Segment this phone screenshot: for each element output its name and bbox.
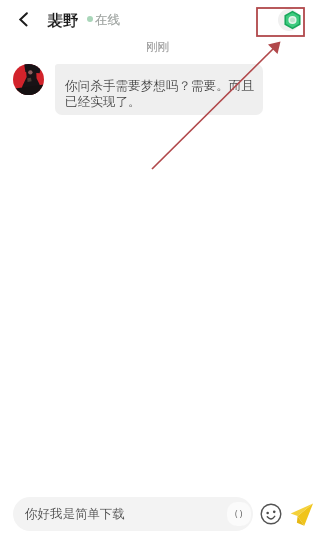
button[interactable]: Back	[4, 3, 36, 35]
staticText: 你好我是简单下载	[25, 506, 125, 522]
button[interactable]: 你问杀手需要梦想吗？需要。而且已经实现了。	[55, 64, 263, 115]
button[interactable]: 你好我是简单下载	[13, 497, 253, 531]
staticText: 在线	[95, 12, 121, 28]
staticText: 你问杀手需要梦想吗？需要。而且已经实现了。	[65, 78, 255, 110]
staticText: ( )	[235, 508, 243, 520]
button[interactable]: Send	[288, 501, 314, 527]
staticText: 刚刚	[146, 40, 169, 54]
button[interactable]: Settings	[272, 0, 313, 38]
button[interactable]: Avatar	[13, 64, 44, 95]
button[interactable]: Emoji	[258, 501, 284, 527]
button[interactable]: Code	[227, 502, 251, 526]
staticText: 裴野	[47, 11, 78, 31]
